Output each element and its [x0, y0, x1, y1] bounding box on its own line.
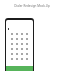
- staticText: Dialer Redesign Mock-Up: [0, 4, 64, 8]
